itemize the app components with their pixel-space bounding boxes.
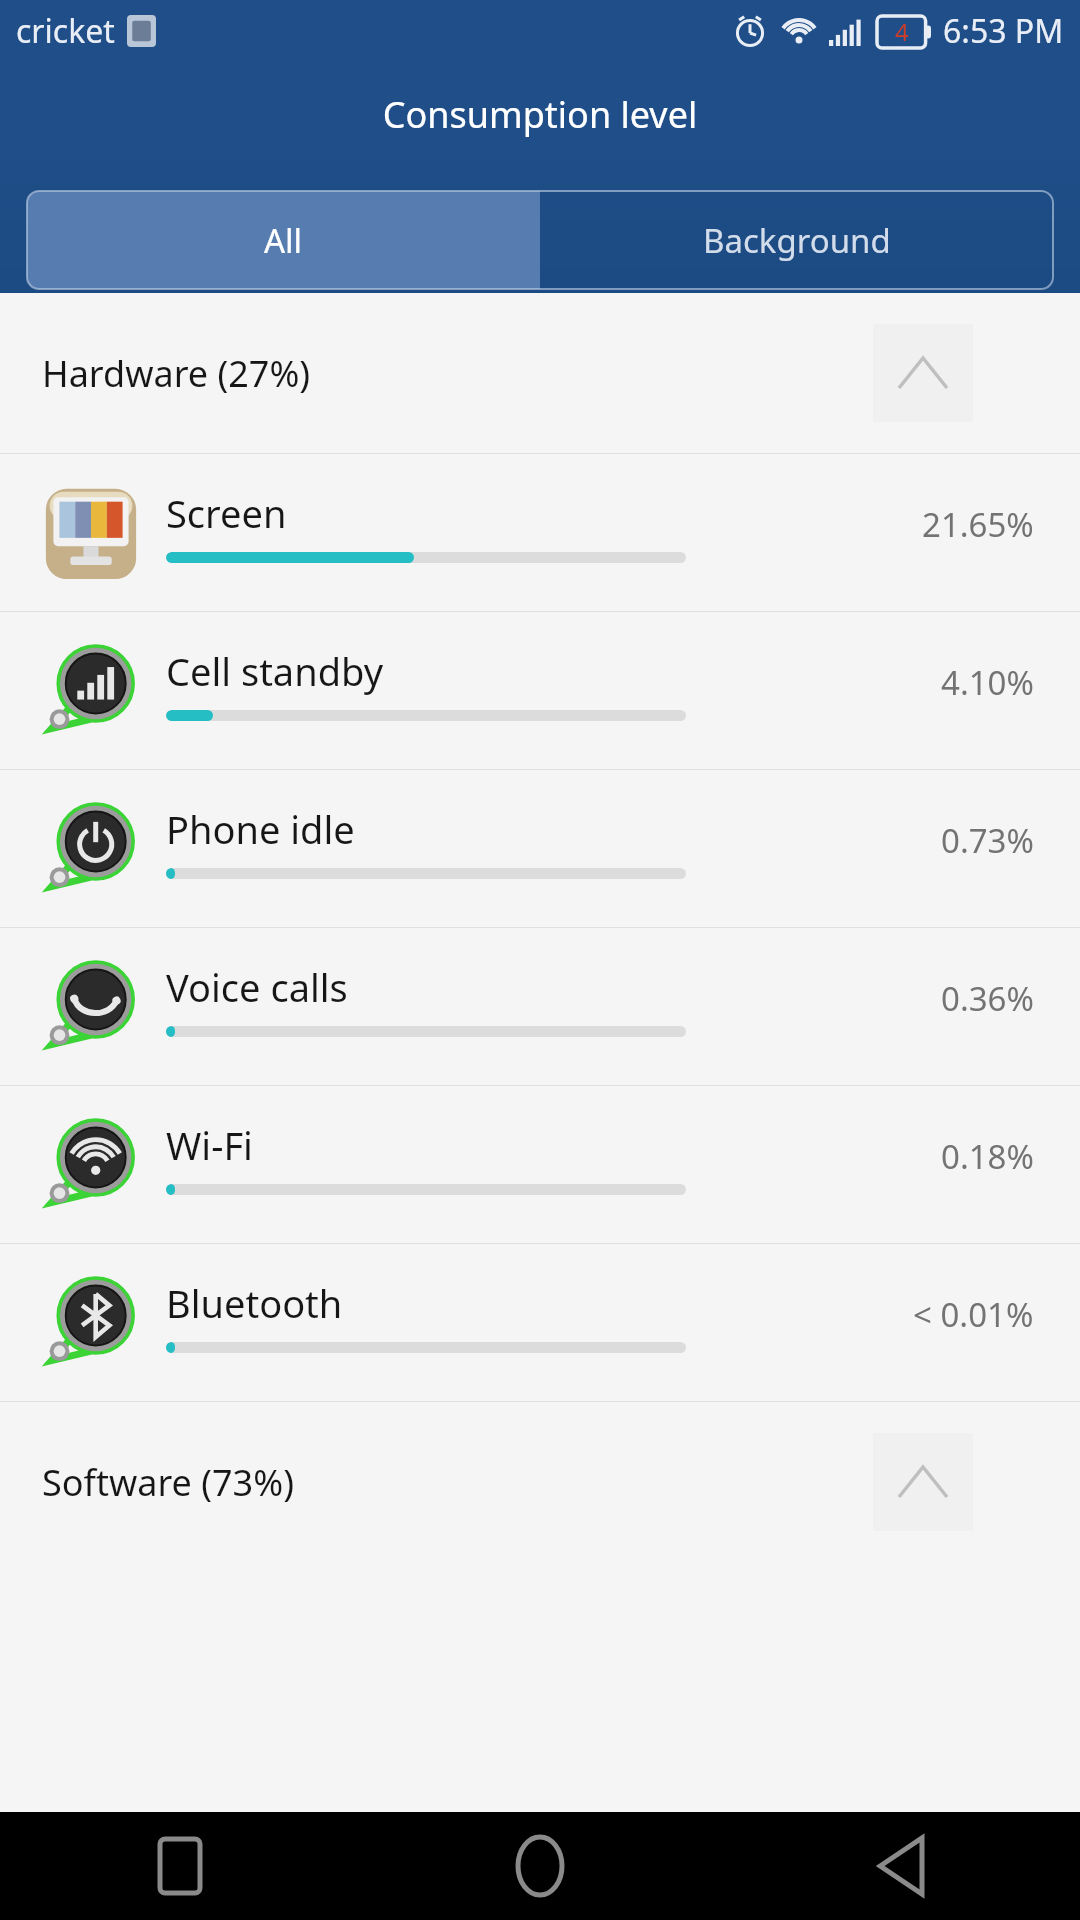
staticText: Cell standby	[166, 645, 384, 697]
button[interactable]: Cell standby	[0, 612, 1080, 769]
button[interactable]: Home	[360, 1812, 720, 1920]
button[interactable]: Hardware (27%)	[0, 293, 1080, 453]
button[interactable]: Software (73%)	[0, 1402, 1080, 1562]
button[interactable]: Recent apps	[0, 1812, 360, 1920]
staticText: 4	[895, 15, 909, 48]
staticText: Consumption level	[0, 90, 1080, 139]
staticText: 6:53 PM	[943, 9, 1064, 53]
staticText: 0.36%	[941, 976, 1034, 1021]
button[interactable]: Background	[540, 191, 1053, 289]
button[interactable]: Wi-Fi	[0, 1086, 1080, 1243]
button[interactable]: Screen	[0, 454, 1080, 611]
staticText: Voice calls	[166, 961, 348, 1013]
staticText: 4.10%	[941, 660, 1034, 705]
staticText: Wi-Fi	[166, 1119, 253, 1171]
staticText: 21.65%	[922, 502, 1034, 547]
staticText: All	[264, 218, 303, 263]
button[interactable]: Phone idle	[0, 770, 1080, 927]
button[interactable]: Collapse	[873, 1433, 973, 1531]
button[interactable]: Voice calls	[0, 928, 1080, 1085]
staticText: Bluetooth	[166, 1277, 343, 1329]
staticText: Screen	[166, 487, 287, 539]
staticText: 0.18%	[941, 1134, 1034, 1179]
staticText: cricket	[16, 9, 115, 53]
button[interactable]: Back	[720, 1812, 1080, 1920]
staticText: Hardware (27%)	[42, 349, 311, 398]
button[interactable]: Bluetooth	[0, 1244, 1080, 1401]
button[interactable]: Collapse	[873, 324, 973, 422]
staticText: Software (73%)	[42, 1458, 294, 1507]
staticText: < 0.01%	[913, 1292, 1034, 1337]
staticText: 0.73%	[941, 818, 1034, 863]
staticText: Background	[703, 218, 891, 263]
staticText: Phone idle	[166, 803, 355, 855]
button[interactable]: All	[27, 191, 540, 289]
